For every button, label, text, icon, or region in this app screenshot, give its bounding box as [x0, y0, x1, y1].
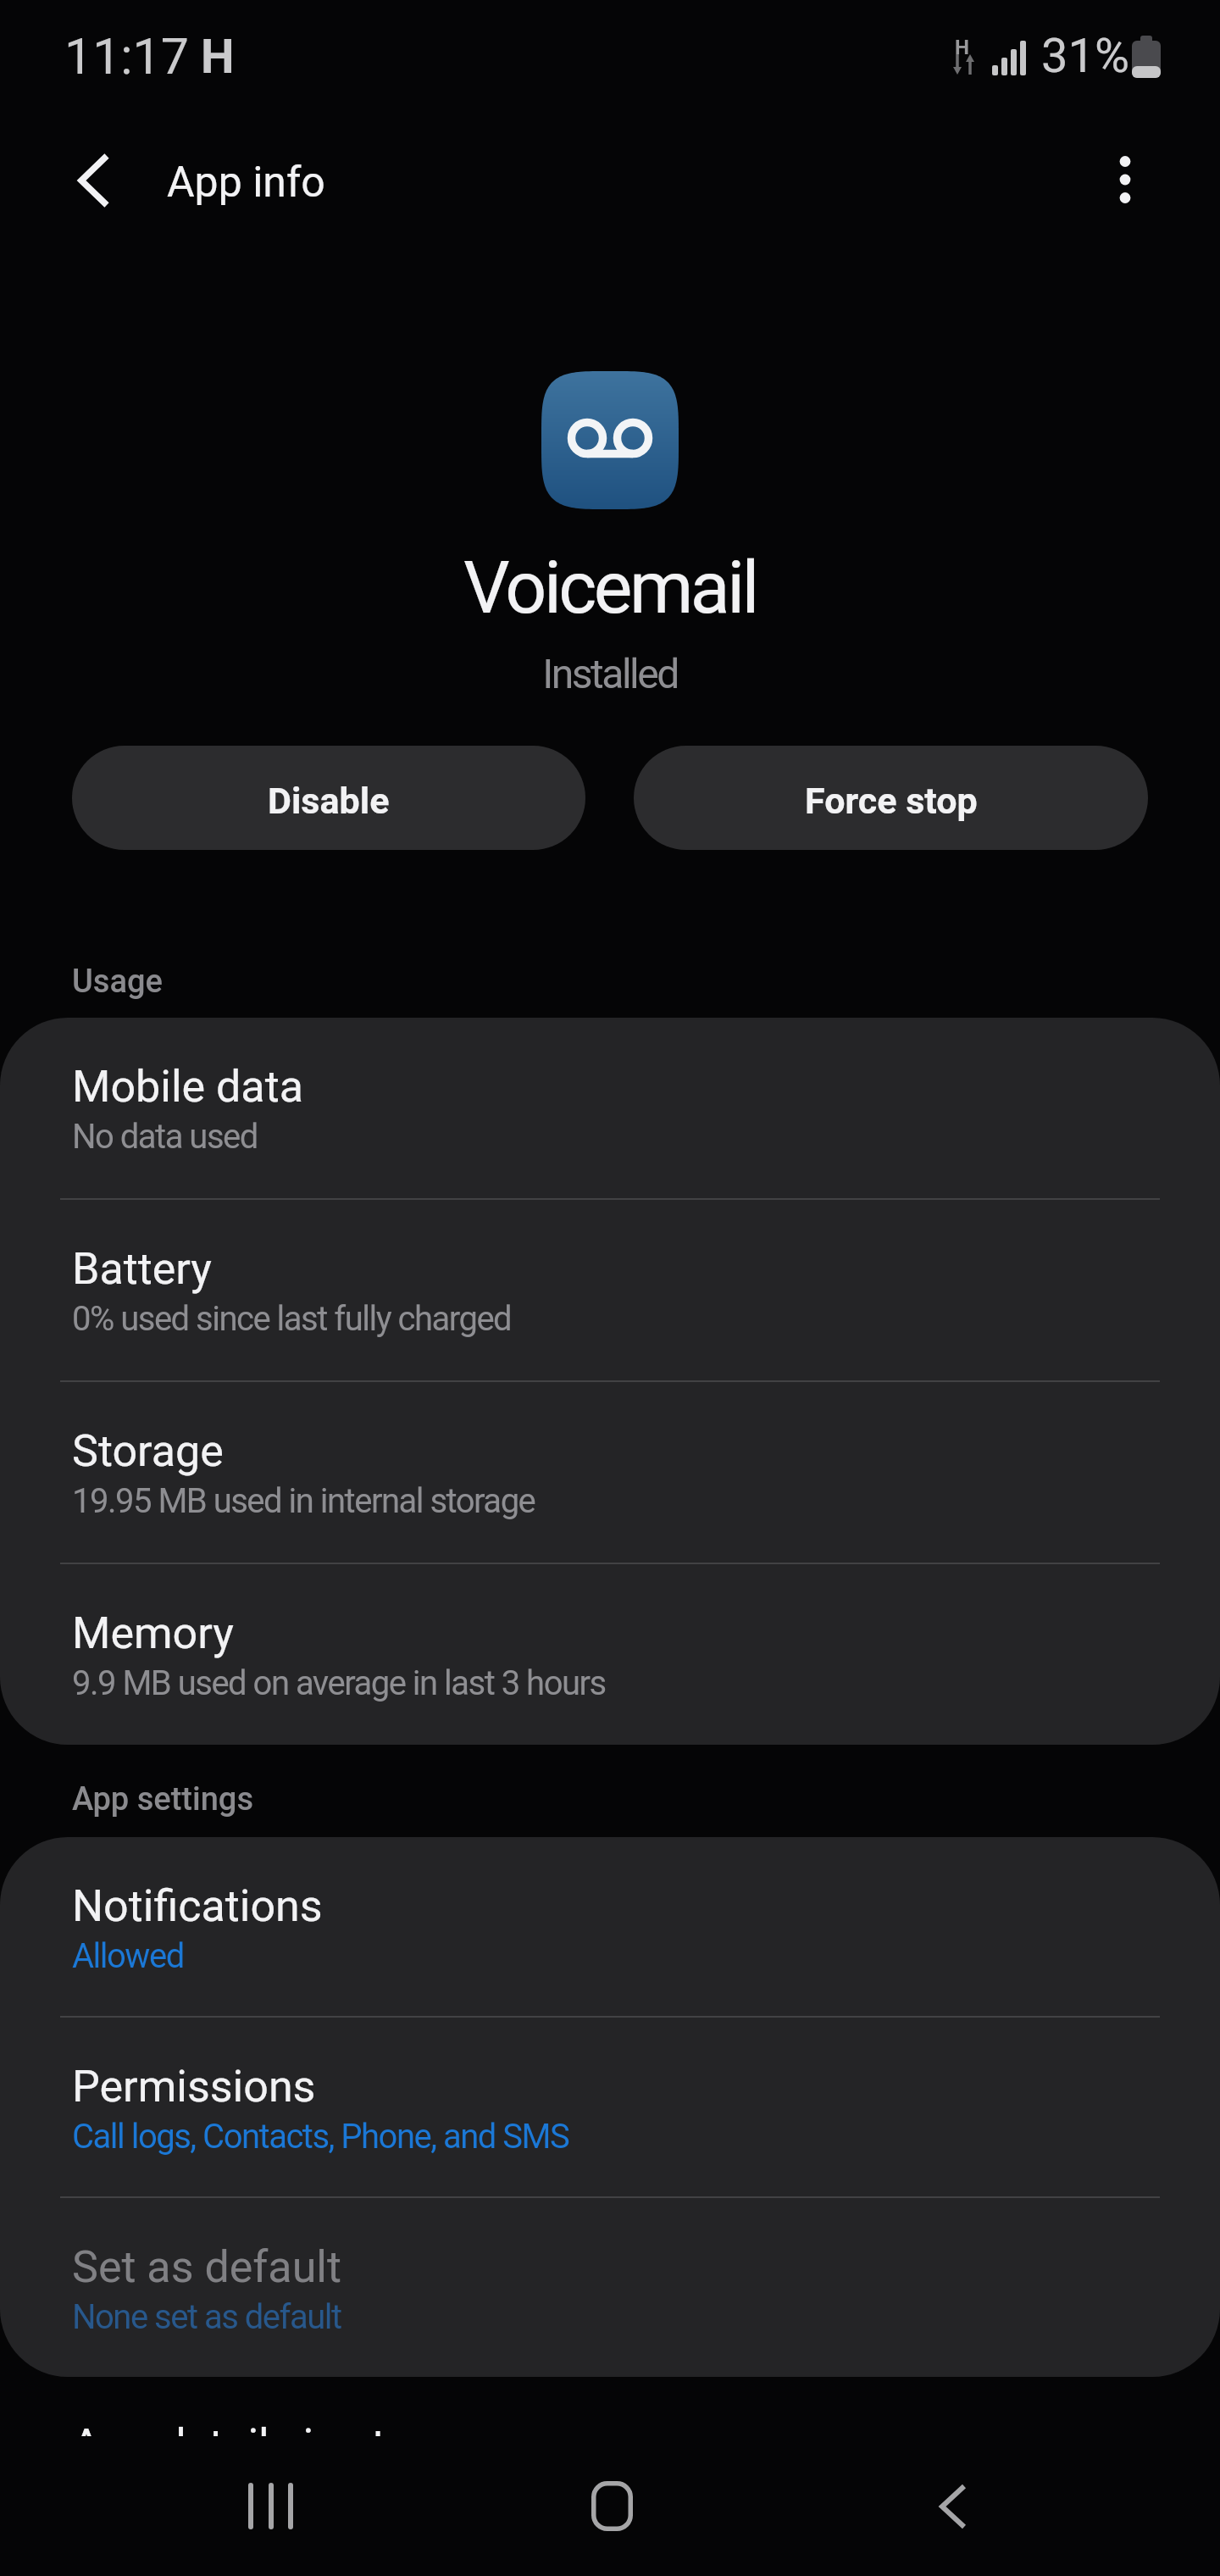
button[interactable]: Mobile data: [0, 1018, 1220, 1198]
staticText: Set as default: [72, 2241, 341, 2293]
staticText: Call logs, Contacts, Phone, and SMS: [72, 2117, 569, 2157]
staticText: 9.9 MB used on average in last 3 hours: [72, 1663, 606, 1703]
staticText: 0% used since last fully charged: [72, 1299, 512, 1339]
button[interactable]: Battery: [0, 1200, 1220, 1380]
staticText: Permissions: [72, 2061, 316, 2112]
staticText: No data used: [72, 1117, 258, 1157]
staticText: Memory: [72, 1607, 234, 1659]
staticText: Storage: [72, 1425, 224, 1477]
staticText: H: [955, 36, 969, 59]
staticText: Mobile data: [72, 1061, 303, 1113]
staticText: Voicemail: [0, 545, 1220, 630]
button[interactable]: Permissions: [0, 2018, 1220, 2196]
staticText: App details in store: [72, 2419, 449, 2471]
button[interactable]: [1090, 144, 1162, 237]
staticText: 19.95 MB used in internal storage: [72, 1481, 535, 1521]
staticText: Installed: [0, 650, 1220, 697]
staticText: Notifications: [72, 1880, 323, 1932]
button[interactable]: [894, 2453, 1012, 2559]
staticText: Battery: [72, 1243, 212, 1295]
button[interactable]: Notifications: [0, 1837, 1220, 2016]
staticText: Usage: [72, 963, 163, 1001]
staticText: Force stop: [805, 780, 978, 822]
button[interactable]: Force stop: [634, 746, 1148, 850]
button[interactable]: Set as default: [0, 2198, 1220, 2377]
staticText: App info: [167, 158, 325, 208]
staticText: H: [201, 29, 235, 85]
staticText: Disable: [268, 780, 390, 822]
button[interactable]: Storage: [0, 1382, 1220, 1563]
staticText: App settings: [72, 1780, 254, 1818]
button[interactable]: [212, 2453, 330, 2559]
staticText: 11:17: [64, 27, 189, 86]
button[interactable]: [551, 2453, 669, 2559]
button[interactable]: Memory: [0, 1564, 1220, 1745]
staticText: Allowed: [72, 1936, 184, 1976]
staticText: None set as default: [72, 2297, 341, 2337]
button[interactable]: Disable: [72, 746, 585, 850]
button[interactable]: [51, 148, 144, 241]
staticText: 31%: [1041, 28, 1129, 84]
